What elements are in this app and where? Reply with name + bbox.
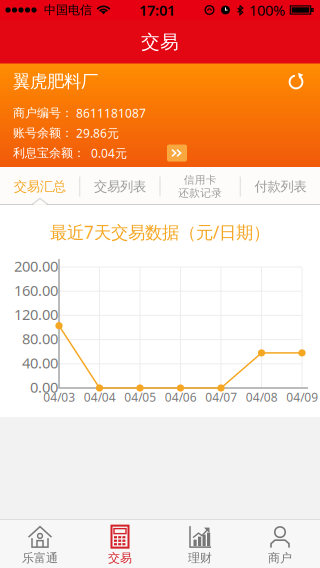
staticText: 中国电信: [44, 3, 92, 17]
staticText: 理财: [188, 551, 212, 565]
staticText: 40.00: [22, 353, 58, 373]
staticText: 100%: [249, 0, 285, 20]
staticText: 200.00: [14, 256, 58, 276]
staticText: 120.00: [14, 305, 58, 324]
staticText: 80.00: [22, 329, 58, 348]
staticText: 账号余额：: [13, 126, 73, 140]
button[interactable]: 交易: [80, 520, 160, 568]
staticText: 0.00: [30, 377, 58, 397]
staticText: 04/05: [124, 389, 156, 405]
staticText: 29.86元: [76, 125, 119, 141]
button[interactable]: 乐富通: [0, 520, 80, 568]
staticText: 交易: [108, 551, 132, 565]
staticText: 04/06: [165, 389, 197, 405]
staticText: 乐富通: [22, 551, 58, 565]
button[interactable]: 交易汇总: [0, 168, 79, 205]
staticText: 8611181087: [76, 105, 146, 121]
staticText: 商户: [268, 551, 292, 565]
staticText: 交易列表: [94, 178, 146, 195]
button[interactable]: 理财: [160, 520, 240, 568]
staticText: 17:01: [139, 0, 175, 20]
staticText: 0.04元: [88, 145, 127, 161]
button[interactable]: 付款列表: [241, 168, 320, 205]
staticText: 还款记录: [178, 186, 222, 200]
staticText: 04/08: [246, 389, 278, 405]
staticText: 信用卡: [184, 173, 217, 186]
staticText: 交易: [141, 30, 179, 53]
staticText: 04/03: [43, 389, 75, 405]
button[interactable]: 利息宝详情: [167, 144, 187, 161]
staticText: 04/07: [205, 389, 237, 405]
staticText: 付款列表: [254, 178, 306, 195]
button[interactable]: 商户: [240, 520, 320, 568]
button[interactable]: 信用卡: [160, 168, 240, 205]
staticText: 交易汇总: [14, 178, 66, 195]
staticText: 160.00: [14, 280, 58, 300]
staticText: 04/09: [286, 389, 318, 405]
staticText: 翼虎肥料厂: [13, 71, 98, 92]
staticText: 商户编号：: [13, 106, 73, 120]
button[interactable]: 交易列表: [80, 168, 159, 205]
staticText: 利息宝余额：: [13, 146, 85, 160]
staticText: 04/04: [84, 389, 116, 405]
button[interactable]: 刷新: [285, 70, 307, 92]
staticText: 最近7天交易数据（元/日期）: [50, 220, 270, 243]
